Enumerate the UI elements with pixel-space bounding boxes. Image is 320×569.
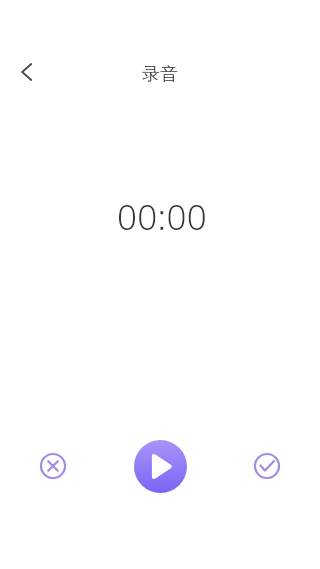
button[interactable] (7, 52, 47, 92)
button[interactable] (29, 442, 77, 490)
staticText: 00:00 (117, 193, 207, 241)
button[interactable] (243, 442, 291, 490)
staticText: 录音 (142, 63, 178, 86)
button[interactable] (134, 440, 187, 493)
